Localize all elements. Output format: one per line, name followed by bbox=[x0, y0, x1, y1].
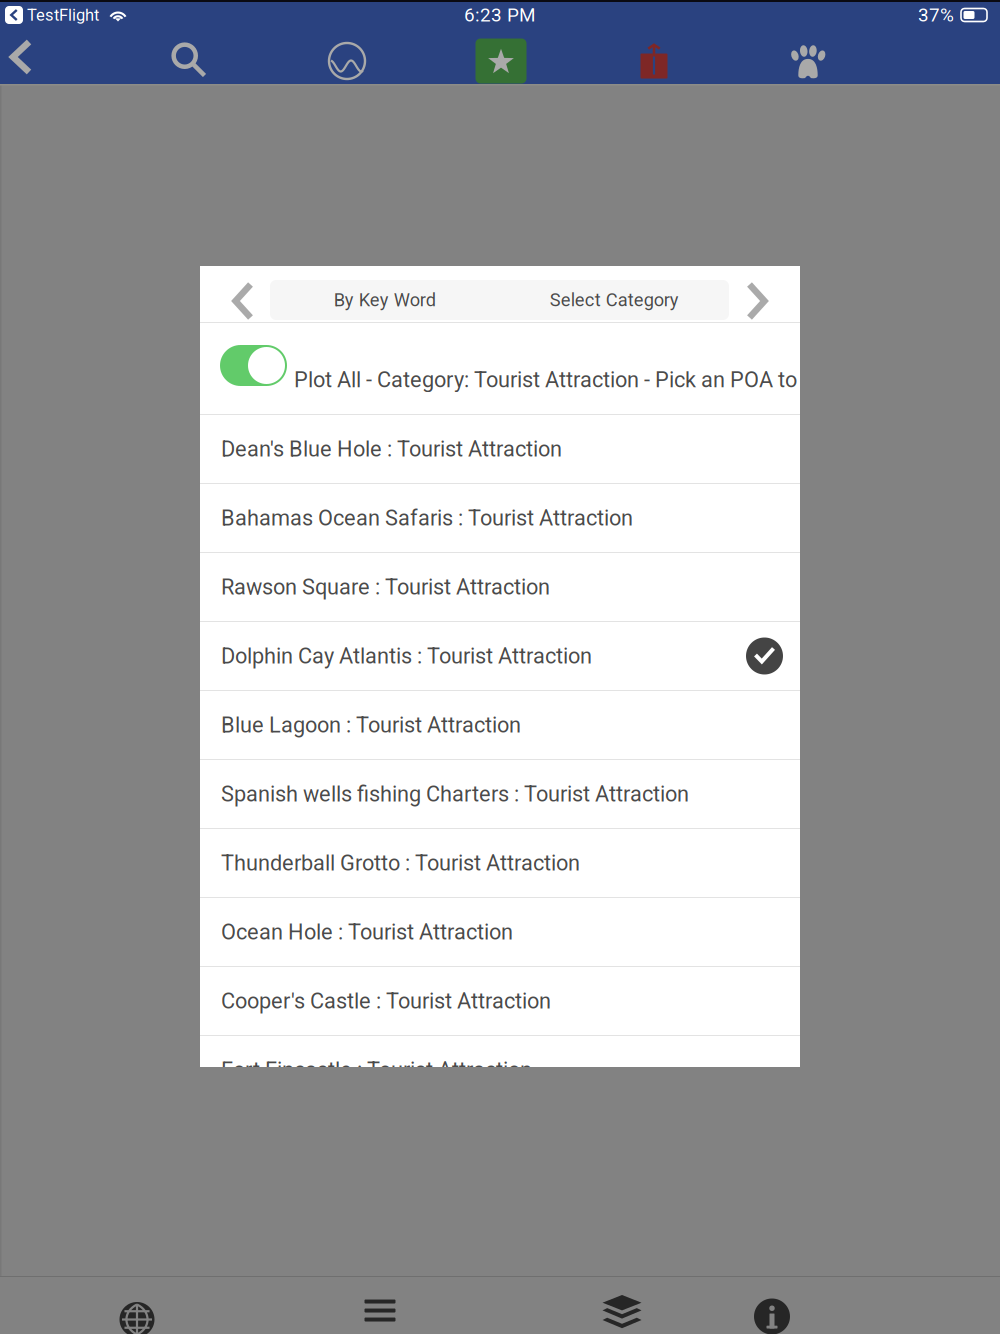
button[interactable]: Menu bbox=[340, 1282, 420, 1334]
staticText: Spanish wells fishing Charters : Tourist… bbox=[221, 781, 689, 807]
button[interactable]: Activity bbox=[315, 33, 379, 89]
button[interactable]: Dean's Blue Hole : Tourist Attraction bbox=[200, 415, 800, 483]
staticText: Dean's Blue Hole : Tourist Attraction bbox=[221, 436, 562, 462]
button[interactable]: Bahamas Ocean Safaris : Tourist Attracti… bbox=[200, 484, 800, 552]
button[interactable]: Cooper's Castle : Tourist Attraction bbox=[200, 967, 800, 1035]
staticText: Bahamas Ocean Safaris : Tourist Attracti… bbox=[221, 505, 633, 531]
button[interactable]: Rawson Square : Tourist Attraction bbox=[200, 553, 800, 621]
staticText: Ocean Hole : Tourist Attraction bbox=[221, 919, 513, 945]
staticText: Blue Lagoon : Tourist Attraction bbox=[221, 712, 521, 738]
button[interactable]: Info bbox=[732, 1288, 812, 1334]
staticText: Fort Fincastle : Tourist Attraction bbox=[221, 1057, 532, 1083]
button[interactable]: Ocean Hole : Tourist Attraction bbox=[200, 898, 800, 966]
button[interactable]: Thunderball Grotto : Tourist Attraction bbox=[200, 829, 800, 897]
staticText: TestFlight bbox=[27, 5, 99, 25]
button[interactable]: Plot All - Category: Tourist Attraction … bbox=[200, 323, 800, 414]
staticText: Thunderball Grotto : Tourist Attraction bbox=[221, 850, 580, 876]
button[interactable]: Share bbox=[622, 35, 686, 91]
staticText: Cooper's Castle : Tourist Attraction bbox=[221, 988, 551, 1014]
button[interactable]: Favorites bbox=[469, 33, 533, 89]
button[interactable]: Globe bbox=[97, 1291, 177, 1334]
button[interactable]: Search bbox=[157, 32, 221, 88]
button[interactable]: Select Category bbox=[499, 280, 729, 320]
staticText: Plot All - Category: Tourist Attraction … bbox=[294, 367, 884, 392]
button[interactable]: Back bbox=[0, 29, 53, 85]
staticText: 6:23 PM bbox=[464, 4, 536, 26]
button[interactable]: Layers bbox=[582, 1284, 662, 1334]
staticText: Dolphin Cay Atlantis : Tourist Attractio… bbox=[221, 643, 592, 669]
button[interactable]: Pets bbox=[776, 33, 840, 89]
button[interactable]: Dolphin Cay Atlantis : Tourist Attractio… bbox=[200, 622, 800, 690]
button[interactable]: Blue Lagoon : Tourist Attraction bbox=[200, 691, 800, 759]
staticText: By Key Word bbox=[334, 289, 436, 311]
staticText: 37% bbox=[918, 4, 954, 26]
staticText: Rawson Square : Tourist Attraction bbox=[221, 574, 550, 600]
button[interactable]: By Key Word bbox=[270, 280, 499, 320]
button[interactable]: Previous bbox=[208, 274, 278, 328]
button[interactable]: Spanish wells fishing Charters : Tourist… bbox=[200, 760, 800, 828]
button[interactable]: Next bbox=[722, 274, 792, 328]
staticText: Select Category bbox=[550, 289, 679, 311]
button[interactable]: Fort Fincastle : Tourist Attraction bbox=[200, 1036, 800, 1104]
